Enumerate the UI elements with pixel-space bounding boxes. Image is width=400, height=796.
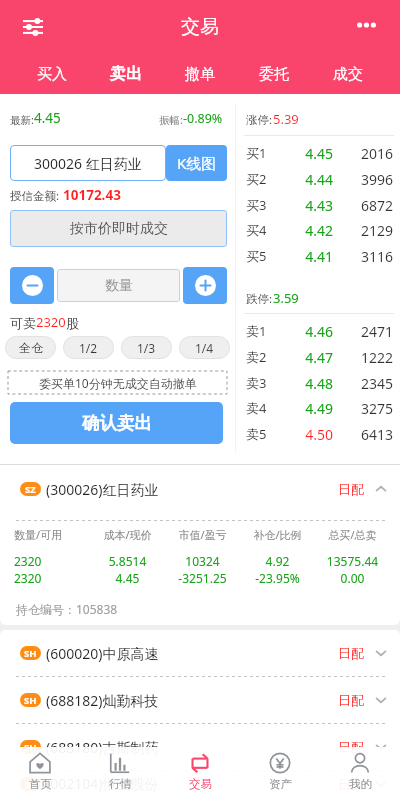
staticText: 交易 bbox=[181, 15, 219, 39]
staticText: 日配 bbox=[338, 739, 364, 755]
button[interactable]: 卖1 bbox=[236, 319, 400, 343]
staticText: 日配 bbox=[338, 692, 364, 708]
button[interactable]: 买2 bbox=[236, 167, 400, 191]
staticText: 委买单10分钟无成交自动撤单 bbox=[39, 375, 197, 391]
staticText: 买2 bbox=[246, 170, 295, 188]
button[interactable]: 行情 bbox=[80, 747, 160, 796]
staticText: 成交 bbox=[333, 65, 363, 84]
button[interactable]: Settings bbox=[15, 9, 51, 45]
button[interactable]: Increase quantity bbox=[183, 267, 227, 304]
staticText: K线图 bbox=[177, 153, 217, 173]
staticText: 2471 bbox=[333, 322, 393, 341]
staticText: 撤单 bbox=[185, 65, 215, 84]
button[interactable]: 卖出 bbox=[89, 54, 163, 94]
staticText: 2320 bbox=[14, 570, 90, 586]
button[interactable]: 卖4 bbox=[236, 396, 400, 420]
button[interactable]: 委托 bbox=[237, 54, 311, 94]
button[interactable]: 买5 bbox=[236, 244, 400, 268]
button[interactable]: 确认卖出 bbox=[10, 402, 223, 444]
staticText: 成本/现价 bbox=[90, 527, 165, 542]
button[interactable]: 卖5 bbox=[236, 422, 400, 446]
staticText: 1/3 bbox=[137, 340, 156, 356]
staticText: 1/2 bbox=[79, 340, 98, 356]
staticText: 确认卖出 bbox=[82, 412, 152, 434]
button[interactable]: 买入 bbox=[15, 54, 89, 94]
staticText: 跌停: bbox=[246, 291, 273, 307]
staticText: 3116 bbox=[333, 247, 393, 266]
staticText: SZ bbox=[25, 778, 36, 791]
staticText: 交易 bbox=[189, 777, 212, 791]
staticText: 4.42 bbox=[295, 221, 333, 240]
button[interactable]: 数量 bbox=[57, 269, 180, 302]
staticText: 300026 红日药业 bbox=[34, 154, 142, 173]
button[interactable]: SH bbox=[20, 677, 388, 723]
button[interactable]: 卖3 bbox=[236, 371, 400, 395]
button[interactable]: 资产 bbox=[240, 747, 320, 796]
staticText: 10172.43 bbox=[63, 186, 121, 204]
button[interactable]: SZ bbox=[20, 771, 388, 796]
staticText: 股 bbox=[66, 315, 79, 331]
staticText: 6872 bbox=[333, 196, 393, 215]
button[interactable]: 1/4 bbox=[179, 336, 230, 359]
button[interactable]: K线图 bbox=[166, 145, 227, 181]
staticText: 5.39 bbox=[273, 110, 299, 128]
staticText: 2320 bbox=[36, 313, 66, 331]
button[interactable]: 买1 bbox=[236, 141, 400, 165]
button[interactable]: 交易 bbox=[160, 747, 240, 796]
staticText: 2016 bbox=[333, 144, 393, 163]
staticText: 2345 bbox=[333, 374, 393, 393]
button[interactable]: 委买单10分钟无成交自动撤单 bbox=[8, 371, 227, 394]
staticText: 补仓/比例 bbox=[240, 527, 315, 542]
staticText: 4.44 bbox=[295, 170, 333, 189]
staticText: 授信金额: bbox=[10, 188, 63, 204]
button[interactable]: 我的 bbox=[320, 747, 400, 796]
button[interactable]: More options bbox=[349, 8, 383, 42]
staticText: 买入 bbox=[37, 65, 67, 84]
staticText: SH bbox=[24, 647, 37, 660]
staticText: 3996 bbox=[333, 170, 393, 189]
staticText: 0.00 bbox=[315, 570, 390, 586]
staticText: 4.45 bbox=[295, 144, 333, 163]
staticText: 13575.44 bbox=[315, 553, 390, 569]
staticText: 买1 bbox=[246, 144, 295, 162]
button[interactable]: 1/3 bbox=[121, 336, 172, 359]
staticText: 我的 bbox=[349, 777, 372, 791]
staticText: 4.41 bbox=[295, 247, 333, 266]
staticText: 振幅: bbox=[159, 113, 183, 127]
button[interactable]: 1/2 bbox=[63, 336, 114, 359]
staticText: 4.48 bbox=[295, 374, 333, 393]
staticText: 3.59 bbox=[273, 289, 299, 307]
button[interactable]: 300026 红日药业 bbox=[10, 145, 166, 181]
staticText: 最新: bbox=[10, 113, 34, 127]
staticText: -0.89% bbox=[183, 110, 223, 127]
staticText: 卖4 bbox=[246, 399, 295, 417]
button[interactable]: 买3 bbox=[236, 193, 400, 217]
button[interactable]: 按市价即时成交 bbox=[10, 210, 227, 247]
button[interactable]: 买4 bbox=[236, 218, 400, 242]
staticText: 市值/盈亏 bbox=[165, 527, 240, 542]
button[interactable]: Decrease quantity bbox=[10, 267, 54, 304]
staticText: 日配 bbox=[338, 776, 364, 792]
staticText: 4.45 bbox=[90, 570, 165, 586]
staticText: 2129 bbox=[333, 221, 393, 240]
staticText: 卖5 bbox=[246, 425, 295, 443]
button[interactable]: SH bbox=[20, 724, 388, 770]
staticText: 1/4 bbox=[195, 340, 214, 356]
button[interactable]: 首页 bbox=[0, 747, 80, 796]
button[interactable]: SH bbox=[20, 630, 388, 676]
staticText: 10324 bbox=[165, 553, 240, 569]
button[interactable]: 撤单 bbox=[163, 54, 237, 94]
button[interactable]: 全仓 bbox=[5, 336, 56, 359]
staticText: 日配 bbox=[338, 481, 364, 497]
staticText: 持仓编号：105838 bbox=[16, 601, 118, 617]
staticText: 按市价即时成交 bbox=[70, 220, 168, 238]
button[interactable]: SZ bbox=[20, 465, 388, 513]
staticText: (600020)中原高速 bbox=[46, 644, 159, 663]
button[interactable]: 卖2 bbox=[236, 345, 400, 369]
staticText: 4.45 bbox=[34, 109, 61, 127]
button[interactable]: 成交 bbox=[311, 54, 385, 94]
staticText: (002104)恒宝股份 bbox=[46, 774, 159, 793]
staticText: 2320 bbox=[14, 553, 90, 569]
staticText: 全仓 bbox=[19, 340, 43, 355]
staticText: 4.50 bbox=[295, 425, 333, 444]
